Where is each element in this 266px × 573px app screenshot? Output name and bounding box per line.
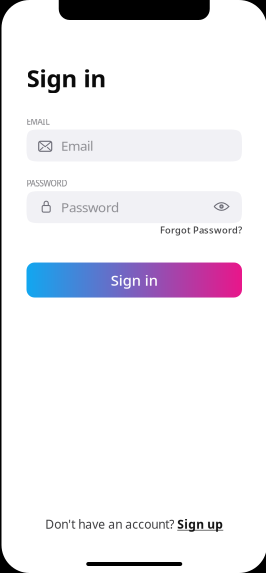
staticText: Sign in: [26, 62, 106, 94]
staticText: EMAIL: [26, 116, 49, 127]
staticText: Email: [61, 137, 93, 154]
staticText: Forgot Password?: [160, 224, 242, 236]
button[interactable]: Sign up: [177, 516, 223, 532]
button[interactable]: Sign in: [26, 262, 242, 297]
staticText: PASSWORD: [26, 178, 67, 189]
staticText: Sign up: [177, 516, 223, 532]
staticText: Password: [61, 198, 119, 216]
button[interactable]: Forgot Password?: [160, 224, 242, 236]
staticText: Don't have an account?: [45, 516, 177, 532]
staticText: Sign in: [111, 270, 158, 290]
